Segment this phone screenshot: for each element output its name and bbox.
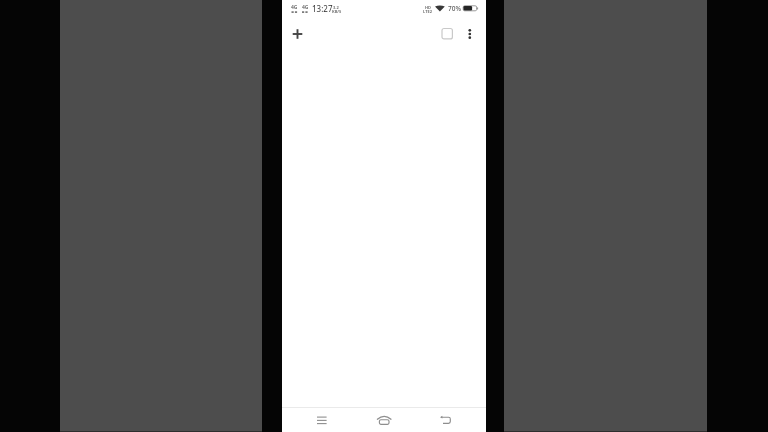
staticText: HD: [425, 5, 431, 10]
button[interactable]: [374, 410, 394, 430]
staticText: 4G: [302, 4, 309, 11]
staticText: 4G: [291, 4, 298, 11]
button[interactable]: [460, 24, 480, 44]
staticText: 70%: [448, 4, 461, 13]
button[interactable]: [285, 22, 309, 46]
staticText: 13:27: [312, 3, 333, 14]
button[interactable]: [435, 410, 455, 430]
staticText: KB/S: [332, 9, 342, 14]
staticText: LTE2: [423, 9, 432, 14]
button[interactable]: [437, 24, 457, 44]
button[interactable]: [312, 410, 332, 430]
staticText: 3.2: [333, 5, 339, 10]
